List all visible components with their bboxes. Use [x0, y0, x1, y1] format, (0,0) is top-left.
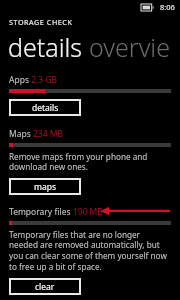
button[interactable]: overview — [89, 30, 180, 64]
staticText: 8:06 — [160, 2, 175, 12]
staticText: details — [32, 102, 59, 114]
button[interactable]: details — [8, 30, 82, 64]
button[interactable]: clear — [9, 278, 81, 295]
button[interactable]: maps — [9, 178, 81, 195]
staticText: overview — [89, 30, 180, 64]
staticText: Remove maps from your phone and download… — [9, 151, 171, 173]
staticText: Temporary files that are no longer neede… — [9, 229, 171, 273]
staticText: STORAGE CHECK — [9, 17, 73, 27]
staticText: clear — [35, 281, 55, 293]
staticText: details — [8, 30, 82, 64]
button[interactable]: details — [9, 99, 81, 116]
staticText: Maps 234 MB — [9, 128, 64, 140]
other: Battery — [141, 4, 154, 11]
staticText: maps — [34, 181, 57, 193]
staticText: Apps 2.3 GB — [9, 74, 58, 86]
staticText: Temporary files 190 MB — [9, 206, 103, 218]
